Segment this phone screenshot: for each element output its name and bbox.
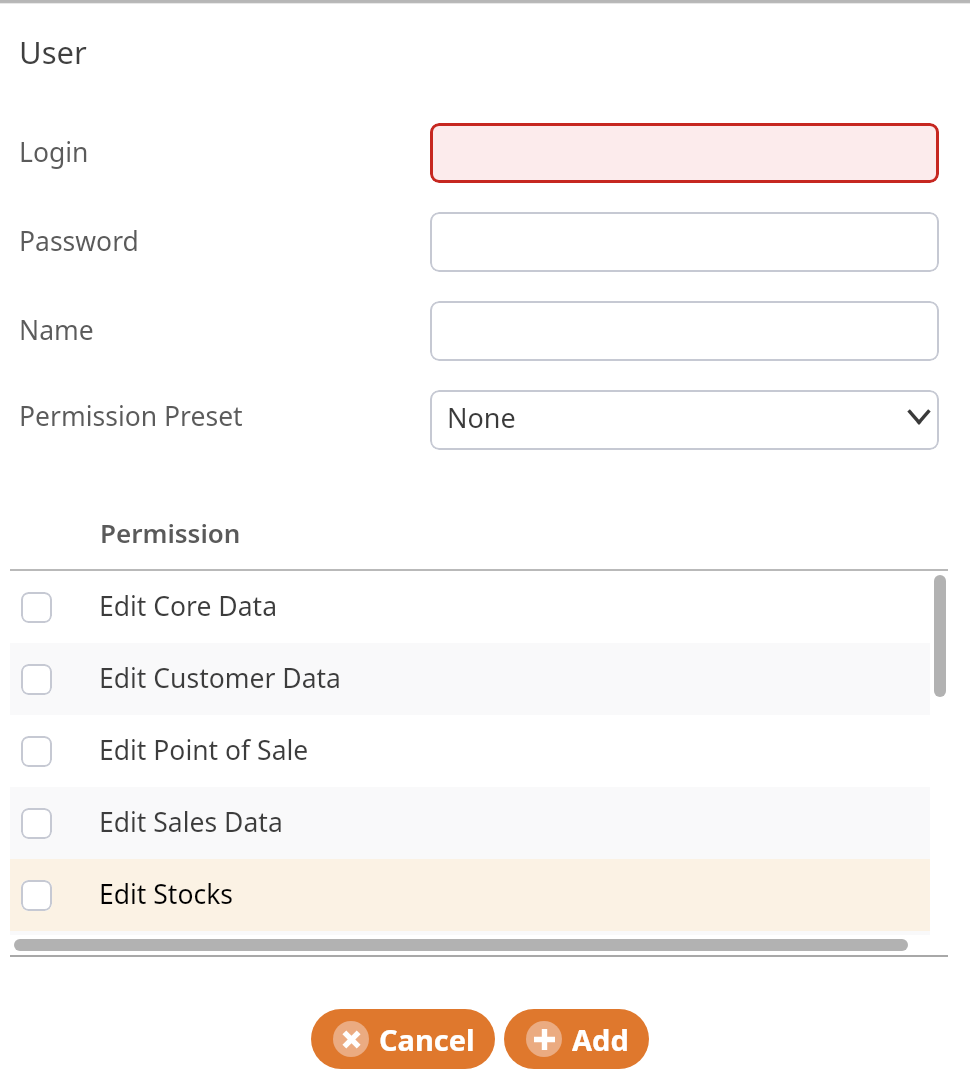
button[interactable]: Password bbox=[430, 212, 939, 272]
button[interactable]: Toggle Edit Sales Data bbox=[10, 787, 930, 859]
staticText: Edit Stocks bbox=[99, 876, 234, 912]
staticText: Edit Point of Sale bbox=[99, 732, 309, 768]
staticText: None bbox=[447, 399, 516, 436]
staticText: Edit Core Data bbox=[99, 588, 278, 624]
button[interactable]: Toggle Edit Customer Data bbox=[21, 664, 52, 695]
staticText: Login bbox=[19, 134, 89, 170]
button[interactable]: Toggle Edit Stocks bbox=[10, 859, 930, 931]
staticText: Name bbox=[19, 312, 94, 348]
button[interactable]: Toggle Edit Core Data bbox=[21, 592, 52, 623]
button[interactable]: Toggle Edit Point of Sale bbox=[21, 736, 52, 767]
staticText: Edit Sales Data bbox=[99, 804, 283, 840]
staticText: Permission bbox=[100, 515, 241, 550]
button[interactable]: Toggle Edit Core Data bbox=[10, 571, 930, 643]
button[interactable]: Toggle Edit Stocks bbox=[21, 880, 52, 911]
button[interactable]: Add bbox=[504, 1009, 649, 1069]
button[interactable]: Cancel bbox=[311, 1009, 495, 1069]
staticText: Permission Preset bbox=[19, 398, 243, 434]
button[interactable]: Toggle Edit Sales Data bbox=[21, 808, 52, 839]
staticText: Cancel bbox=[379, 1020, 475, 1059]
staticText: Password bbox=[19, 223, 139, 259]
button[interactable]: Toggle Edit Customer Data bbox=[10, 643, 930, 715]
button[interactable]: Login bbox=[430, 123, 939, 183]
staticText: Edit Customer Data bbox=[99, 660, 341, 696]
button[interactable]: None bbox=[430, 390, 939, 450]
staticText: Add bbox=[572, 1020, 629, 1059]
button[interactable]: Name bbox=[430, 301, 939, 361]
button[interactable]: Toggle Edit Point of Sale bbox=[10, 715, 930, 787]
staticText: User bbox=[19, 31, 87, 73]
